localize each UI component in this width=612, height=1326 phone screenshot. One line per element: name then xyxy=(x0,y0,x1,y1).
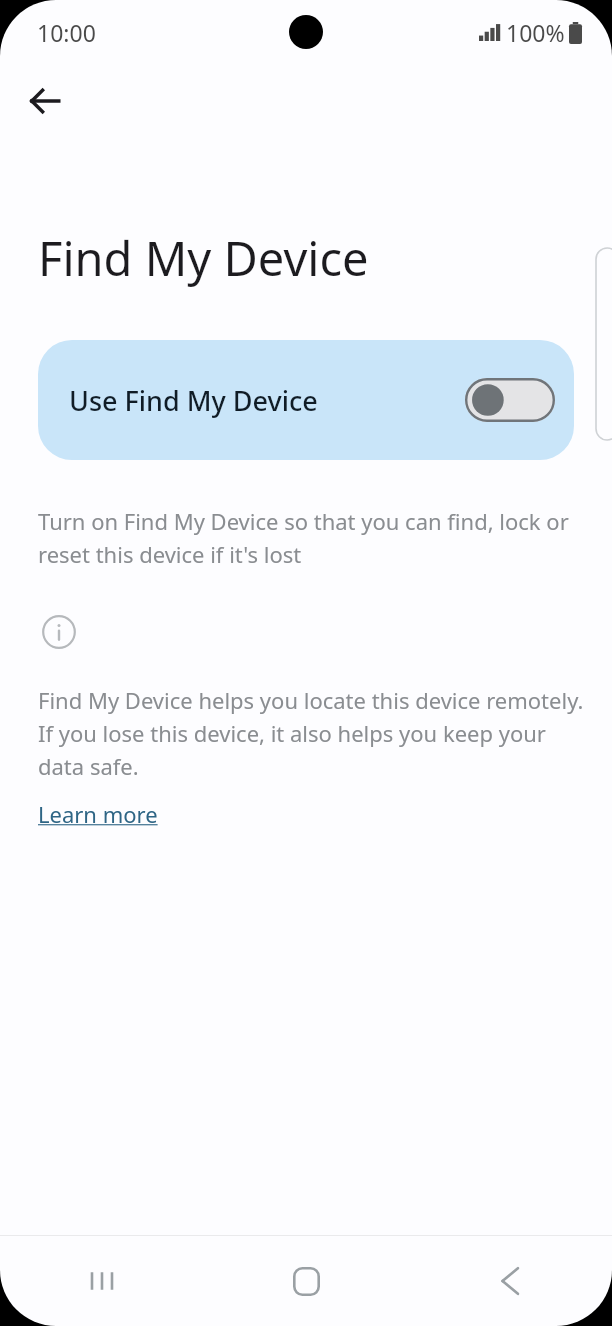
staticText: 100% xyxy=(506,17,565,48)
staticText: 10:00 xyxy=(37,17,96,48)
button[interactable]: Learn more xyxy=(38,799,158,829)
button[interactable]: Recent apps xyxy=(0,1236,204,1326)
button[interactable]: Back xyxy=(16,72,74,130)
staticText: Learn more xyxy=(38,799,158,829)
staticText: Turn on Find My Device so that you can f… xyxy=(38,506,586,569)
button[interactable]: Back xyxy=(408,1236,612,1326)
button[interactable]: Home xyxy=(204,1236,408,1326)
staticText: Use Find My Device xyxy=(69,382,465,419)
staticText: Find My Device xyxy=(38,226,369,290)
button[interactable]: Use Find My Device xyxy=(38,340,574,460)
staticText: Find My Device helps you locate this dev… xyxy=(38,685,586,781)
